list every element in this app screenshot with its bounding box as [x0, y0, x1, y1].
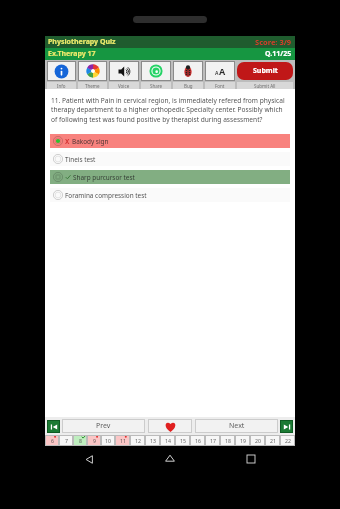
button[interactable]: Home: [161, 450, 179, 468]
staticText: Bakody sign: [72, 137, 109, 146]
button[interactable]: Info: [47, 61, 76, 81]
button[interactable]: 16: [190, 435, 205, 446]
staticText: 11. Patient with Pain in cervical region…: [51, 96, 289, 124]
staticText: 6: [51, 437, 54, 444]
staticText: 14: [165, 437, 171, 444]
staticText: Foramina compression test: [65, 191, 147, 200]
staticText: Submit: [253, 66, 278, 76]
button[interactable]: 13: [145, 435, 160, 446]
button[interactable]: Font: [205, 61, 235, 81]
staticText: 21: [270, 437, 276, 444]
button[interactable]: 18: [220, 435, 235, 446]
staticText: Share: [150, 83, 163, 89]
staticText: Submit All: [254, 83, 276, 89]
button[interactable]: 6: [45, 435, 59, 446]
staticText: 7: [65, 437, 68, 444]
button[interactable]: Back: [80, 450, 98, 468]
button[interactable]: 14: [160, 435, 175, 446]
staticText: 8: [79, 437, 82, 444]
button[interactable]: 15: [175, 435, 190, 446]
staticText: 15: [180, 437, 186, 444]
staticText: 13: [150, 437, 156, 444]
staticText: Font: [215, 83, 225, 89]
button[interactable]: Prev: [62, 419, 145, 433]
staticText: Ex.Therapy 17: [48, 49, 96, 59]
staticText: Next: [229, 421, 245, 431]
staticText: Bug: [184, 83, 193, 89]
button[interactable]: X: [50, 134, 290, 148]
staticText: Physiotherapy Quiz: [48, 37, 116, 47]
staticText: 9: [93, 437, 96, 444]
button[interactable]: Voice: [109, 61, 139, 81]
staticText: 16: [195, 437, 201, 444]
button[interactable]: Recents: [242, 450, 260, 468]
staticText: A: [215, 70, 219, 77]
button[interactable]: Last question: [280, 420, 293, 433]
button[interactable]: 8: [73, 435, 87, 446]
button[interactable]: 19: [235, 435, 250, 446]
button[interactable]: 10: [101, 435, 115, 446]
staticText: A: [219, 65, 226, 77]
button[interactable]: Submit: [237, 62, 293, 80]
button[interactable]: 12: [130, 435, 145, 446]
staticText: 10: [105, 437, 111, 444]
button[interactable]: 22: [280, 435, 295, 446]
button[interactable]: 17: [205, 435, 220, 446]
staticText: Sharp purcursor test: [73, 173, 135, 182]
staticText: Tineis test: [65, 155, 96, 164]
staticText: 20: [255, 437, 261, 444]
staticText: 22: [285, 437, 291, 444]
staticText: Voice: [118, 83, 130, 89]
button[interactable]: Share: [141, 61, 171, 81]
staticText: 19: [240, 437, 246, 444]
button[interactable]: Foramina compression test: [50, 188, 290, 202]
button[interactable]: 20: [250, 435, 265, 446]
staticText: 18: [225, 437, 231, 444]
button[interactable]: 11: [115, 435, 130, 446]
button[interactable]: Sharp purcursor test: [50, 170, 290, 184]
button[interactable]: Theme: [78, 61, 107, 81]
staticText: 17: [210, 437, 216, 444]
staticText: Prev: [96, 421, 111, 431]
button[interactable]: 7: [59, 435, 73, 446]
button[interactable]: 9: [87, 435, 101, 446]
staticText: Info: [57, 83, 66, 89]
staticText: Score: 3/9: [255, 37, 292, 47]
button[interactable]: First question: [47, 420, 60, 433]
staticText: 11: [120, 437, 126, 444]
button[interactable]: Next: [195, 419, 278, 433]
button[interactable]: Favourite: [148, 419, 192, 433]
button[interactable]: Tineis test: [50, 152, 290, 166]
staticText: X: [65, 137, 70, 146]
staticText: Theme: [85, 83, 100, 89]
staticText: Q.11/25: [265, 49, 292, 59]
button[interactable]: Bug: [173, 61, 203, 81]
button[interactable]: 21: [265, 435, 280, 446]
staticText: 12: [135, 437, 141, 444]
